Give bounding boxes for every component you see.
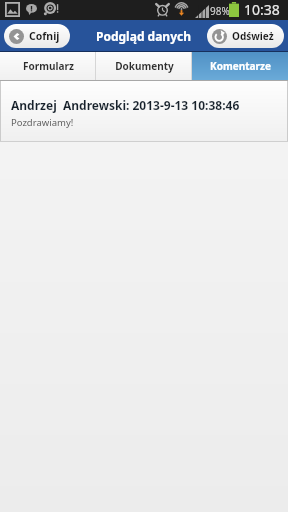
- staticText: Podgląd danych: [96, 28, 192, 44]
- staticText: 10:38: [244, 0, 280, 19]
- button[interactable]: Komentarze: [192, 52, 288, 80]
- staticText: Odśwież: [232, 29, 274, 43]
- staticText: Pozdrawiamy!: [11, 116, 74, 129]
- button[interactable]: Odśwież: [207, 24, 284, 48]
- button[interactable]: Cofnij: [4, 24, 70, 48]
- staticText: 98%: [210, 4, 230, 18]
- button[interactable]: Formularz: [0, 52, 96, 80]
- button[interactable]: Dokumenty: [96, 52, 192, 80]
- staticText: Formularz: [23, 59, 74, 73]
- staticText: Cofnij: [29, 29, 60, 43]
- button[interactable]: Andrzej Andrewski: 2013-9-13 10:38:46: [0, 81, 288, 142]
- staticText: Dokumenty: [115, 59, 174, 73]
- staticText: Andrzej Andrewski: 2013-9-13 10:38:46: [11, 97, 240, 113]
- staticText: Komentarze: [210, 59, 271, 73]
